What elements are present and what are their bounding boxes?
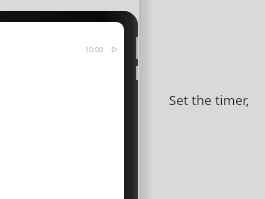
staticText: Set the timer, — [169, 91, 250, 109]
button[interactable]: Set the timer, — [169, 91, 250, 109]
button[interactable]: 10:00 — [85, 45, 103, 55]
button[interactable]: 10:00 — [0, 11, 138, 199]
button[interactable]: Play — [109, 44, 120, 55]
staticText: 10:00 — [85, 45, 103, 55]
